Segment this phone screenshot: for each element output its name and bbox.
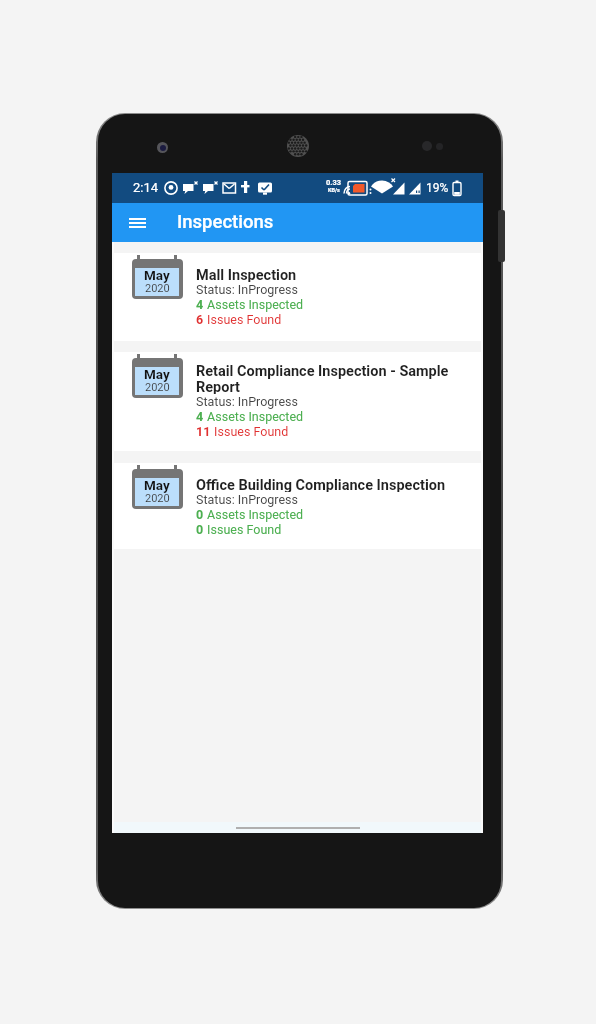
staticText: Status: InProgress <box>196 492 298 507</box>
staticText: 6 <box>196 312 204 327</box>
staticText: 4 <box>196 409 204 424</box>
staticText: Assets Inspected <box>204 297 304 312</box>
staticText: May <box>144 477 170 493</box>
staticText: Issues Found <box>211 424 289 439</box>
staticText: Inspections <box>177 211 274 233</box>
staticText: Status: InProgress <box>196 282 298 297</box>
staticText: 0 <box>196 522 204 537</box>
staticText: Status: InProgress <box>196 394 298 409</box>
staticText: 0.33 <box>326 178 342 187</box>
staticText: 2:14 <box>133 180 159 195</box>
button[interactable]: May <box>112 352 483 451</box>
button[interactable]: May <box>112 463 483 549</box>
staticText: 2020 <box>145 282 170 295</box>
staticText: Issues Found <box>204 312 282 327</box>
button[interactable]: May <box>112 253 483 341</box>
staticText: 2020 <box>145 492 170 505</box>
staticText: May <box>144 267 170 283</box>
staticText: 0 <box>196 507 204 522</box>
staticText: 19% <box>426 181 449 195</box>
staticText: Office Building Compliance Inspection <box>196 477 446 492</box>
staticText: Issues Found <box>204 522 282 537</box>
staticText: Retail Compliance Inspection - Sample Re… <box>196 363 469 394</box>
staticText: May <box>144 366 170 382</box>
staticText: Mall Inspection <box>196 267 297 282</box>
staticText: 2020 <box>145 381 170 394</box>
button[interactable]: Open navigation menu <box>118 203 156 242</box>
staticText: KB/s <box>328 187 340 193</box>
staticText: 4 <box>196 297 204 312</box>
staticText: 11 <box>196 424 211 439</box>
staticText: Assets Inspected <box>204 409 304 424</box>
staticText: Assets Inspected <box>204 507 304 522</box>
